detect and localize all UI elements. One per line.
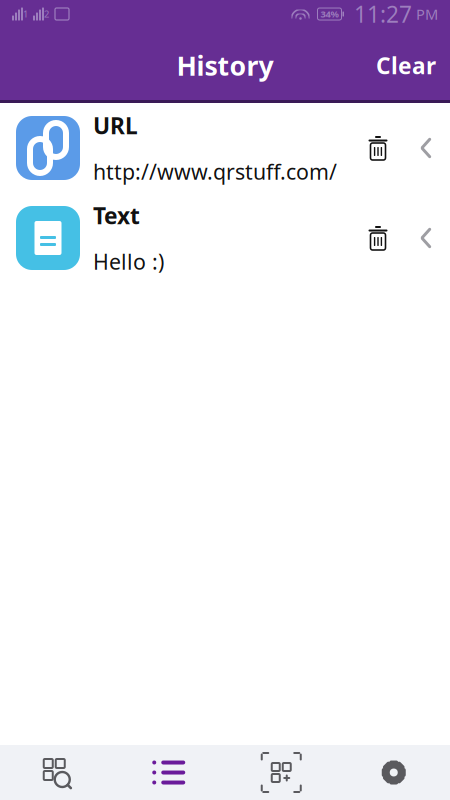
button[interactable]: URL (0, 103, 450, 193)
staticText: http://www.qrstuff.com/ (93, 157, 337, 186)
staticText: Hello :) (93, 247, 164, 276)
staticText: Text (93, 200, 140, 230)
staticText: PM (412, 4, 438, 24)
button[interactable]: Create QR code (225, 745, 337, 800)
button[interactable]: Delete (356, 127, 400, 169)
button[interactable]: History (112, 745, 225, 800)
staticText: Clear (376, 50, 436, 80)
button[interactable]: Delete (356, 217, 400, 259)
staticText: History (176, 48, 273, 83)
staticText: 2 (44, 8, 49, 20)
button[interactable]: Text (0, 193, 450, 283)
button[interactable]: Scan QR code (0, 745, 112, 800)
button[interactable]: Settings (337, 745, 450, 800)
staticText: 11:27 (354, 0, 412, 29)
staticText: 1 (23, 8, 28, 20)
staticText: 34% (320, 8, 338, 20)
staticText: URL (93, 110, 138, 140)
button[interactable]: Clear (362, 40, 450, 90)
